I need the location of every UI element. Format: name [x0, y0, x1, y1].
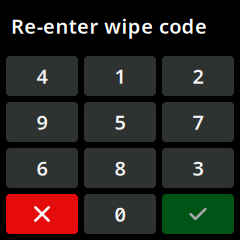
- button[interactable]: 7: [162, 102, 234, 142]
- button[interactable]: 5: [84, 102, 156, 142]
- button[interactable]: 4: [6, 56, 78, 96]
- button[interactable]: 2: [162, 56, 234, 96]
- staticText: 7: [192, 109, 203, 135]
- button[interactable]: 1: [84, 56, 156, 96]
- button[interactable]: 9: [6, 102, 78, 142]
- button[interactable]: Confirm: [162, 194, 234, 234]
- button[interactable]: 0: [84, 194, 156, 234]
- staticText: 8: [114, 155, 125, 181]
- staticText: 1: [114, 63, 125, 89]
- staticText: 0: [114, 201, 125, 227]
- staticText: Re-enter wipe code: [11, 13, 207, 39]
- button[interactable]: 3: [162, 148, 234, 188]
- staticText: 5: [114, 109, 125, 135]
- staticText: 4: [36, 63, 47, 89]
- button[interactable]: Cancel: [6, 194, 78, 234]
- staticText: 3: [192, 155, 203, 181]
- staticText: 2: [192, 63, 203, 89]
- button[interactable]: 8: [84, 148, 156, 188]
- button[interactable]: 6: [6, 148, 78, 188]
- staticText: 6: [36, 155, 47, 181]
- staticText: 9: [36, 109, 47, 135]
